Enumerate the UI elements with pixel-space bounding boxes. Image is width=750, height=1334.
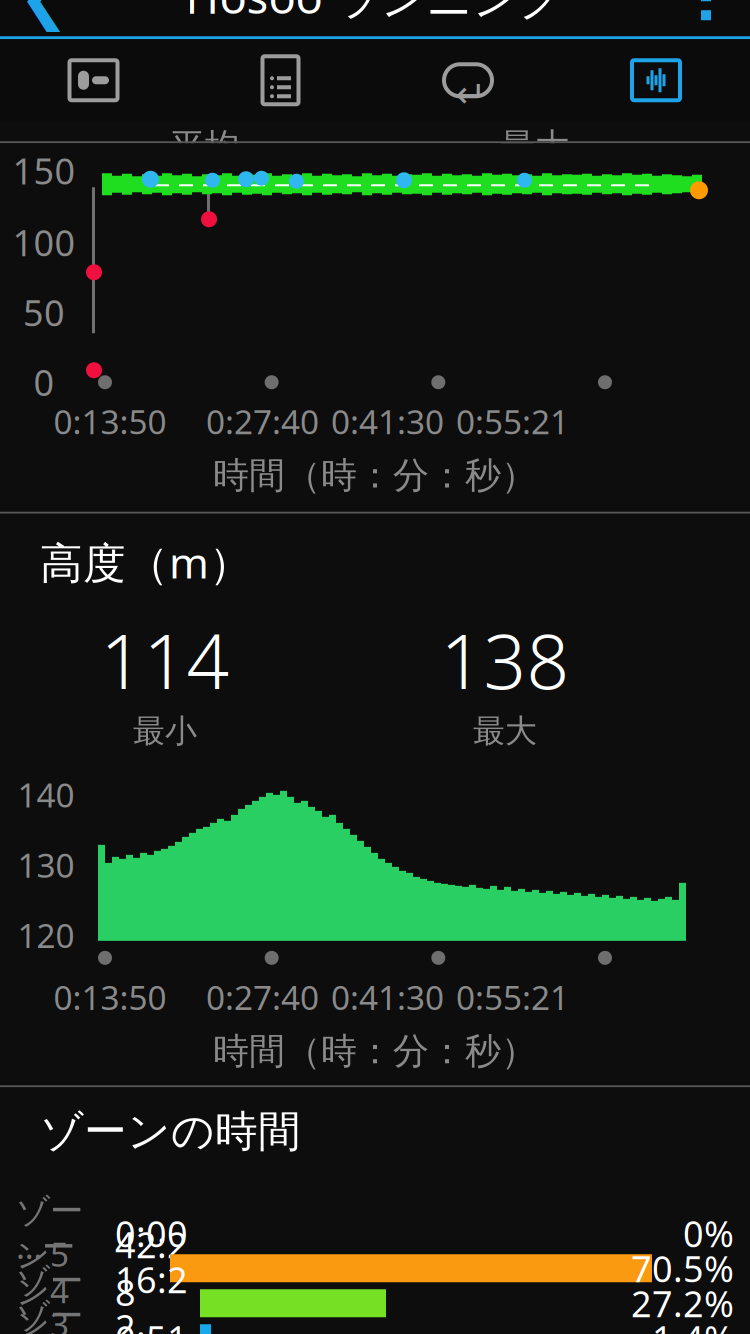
staticText: 138 (440, 610, 569, 710)
staticText: 100 (12, 218, 75, 266)
staticText: 16:22 (115, 1255, 188, 1334)
button[interactable]: Back (0, 0, 88, 39)
staticText: 0:41:30 (331, 399, 444, 444)
staticText: 1.4% (652, 1314, 734, 1334)
staticText: 時間（時：分：秒） (213, 1029, 537, 1073)
staticText: 42:28 (115, 1220, 188, 1316)
staticText: 0% (683, 1209, 734, 1257)
staticText: ゾーン2 (16, 1296, 83, 1334)
staticText: 150 (12, 147, 75, 194)
staticText: …ーン4 (16, 1224, 75, 1312)
staticText: 0:55:21 (456, 975, 569, 1019)
staticText: 高度（m） (40, 534, 252, 590)
staticText: 70.5% (631, 1244, 734, 1292)
button[interactable]: Map (0, 39, 187, 121)
staticText: 0:41:30 (331, 975, 444, 1019)
staticText: 最大 (473, 712, 537, 751)
staticText: 0:27:40 (206, 399, 319, 444)
staticText: 時間（時：分：秒） (213, 453, 537, 498)
staticText: 最小 (133, 712, 197, 751)
button[interactable]: More options (662, 0, 750, 39)
staticText: 0:51 (115, 1314, 188, 1334)
staticText: 最大 (500, 125, 570, 168)
staticText: 0 (33, 358, 54, 406)
staticText: 0:13:50 (53, 975, 166, 1019)
staticText: ゾーン1 (16, 1331, 83, 1334)
staticText: ゾーン5 (16, 1191, 83, 1276)
staticText: ↵ (455, 73, 486, 115)
button[interactable]: Charts (562, 39, 750, 121)
staticText: 114 (100, 610, 229, 710)
staticText: 0:13:50 (53, 399, 166, 444)
button[interactable]: Laps (374, 39, 562, 121)
staticText: 27.2% (631, 1279, 734, 1327)
staticText: ゾーン3 (16, 1261, 83, 1334)
staticText: 0:27:40 (206, 975, 319, 1019)
staticText: Hosoo ランニング (185, 0, 564, 26)
staticText: ❮ (18, 0, 69, 31)
staticText: 130 (17, 843, 74, 887)
staticText: 0:00 (115, 1209, 188, 1257)
staticText: 50 (23, 288, 65, 336)
staticText: 140 (17, 772, 74, 817)
staticText: 0:55:21 (456, 399, 569, 444)
staticText: ゾーンの時間 (40, 1105, 301, 1158)
button[interactable]: Details (187, 39, 374, 121)
staticText: 平均 (170, 125, 240, 168)
staticText: 120 (17, 913, 74, 957)
